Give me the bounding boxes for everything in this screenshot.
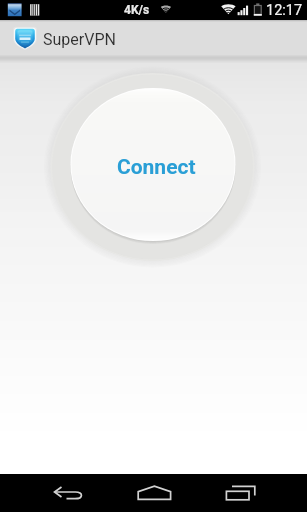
- button[interactable]: Home: [111, 474, 197, 512]
- staticText: 12:17: [266, 2, 303, 19]
- button[interactable]: Back: [25, 474, 111, 512]
- button[interactable]: Recent apps: [197, 474, 283, 512]
- staticText: 4K/s: [124, 3, 150, 17]
- staticText: SuperVPN: [43, 30, 116, 49]
- staticText: Connect: [117, 155, 196, 180]
- button[interactable]: [71, 89, 235, 241]
